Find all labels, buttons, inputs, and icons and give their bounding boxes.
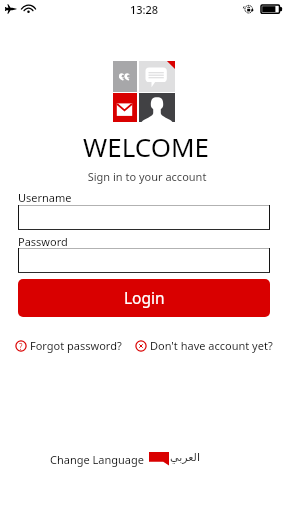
staticText: Don't have account yet?	[150, 338, 273, 353]
staticText: WELCOME	[2, 129, 288, 164]
staticText: Username	[18, 190, 72, 205]
staticText: Sign in to your account	[3, 169, 288, 184]
button[interactable]	[18, 248, 270, 273]
staticText: 13:28	[130, 2, 159, 17]
staticText: العربي	[170, 451, 201, 464]
staticText: Login	[124, 287, 165, 308]
button[interactable]: Don't have account yet?	[135, 338, 273, 353]
button[interactable]: Login	[18, 279, 270, 317]
staticText: Password	[18, 234, 68, 249]
button[interactable]: Change Language	[50, 450, 201, 467]
staticText: ?	[19, 341, 23, 352]
button[interactable]	[18, 205, 270, 230]
staticText: Forgot password?	[30, 338, 122, 353]
button[interactable]: ?	[15, 338, 122, 353]
staticText: Change Language	[50, 452, 144, 467]
